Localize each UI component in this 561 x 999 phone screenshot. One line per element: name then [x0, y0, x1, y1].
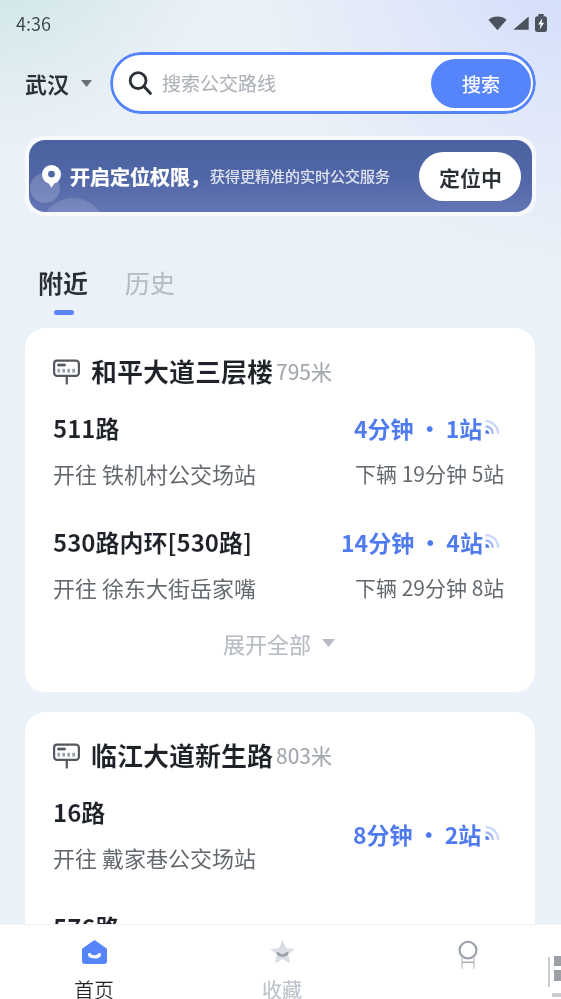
button[interactable]: 511路 — [53, 410, 505, 489]
staticText: 首页 — [74, 975, 114, 999]
staticText: 附近 — [38, 264, 89, 300]
staticText: 历史 — [125, 264, 176, 300]
staticText: 开往 徐东大街岳家嘴 — [53, 571, 256, 603]
staticText: 搜索 — [462, 70, 501, 98]
staticText: 14分钟 · 4站 — [341, 525, 483, 558]
staticText: 定位中 — [439, 162, 502, 192]
button[interactable]: 530路内环[530路] — [53, 524, 505, 603]
staticText: 下辆 19分钟 5站 — [355, 458, 505, 488]
staticText: 和平大道三层楼 — [91, 352, 274, 390]
staticText: 下辆 29分钟 8站 — [355, 572, 505, 602]
staticText: 开启定位权限， — [70, 162, 210, 191]
button[interactable]: 开启定位权限， — [29, 140, 532, 212]
staticText: 795米 — [276, 356, 332, 386]
staticText: 4分钟 · 1站 — [354, 411, 483, 444]
staticText: 8分钟 · 2站 — [353, 817, 482, 850]
staticText: 576路 — [53, 909, 120, 944]
staticText: 收藏 — [262, 975, 302, 999]
staticText: 武汉 — [25, 67, 70, 99]
staticText: 搜索公交路线 — [162, 69, 277, 97]
button[interactable]: 首页 — [0, 924, 188, 999]
button[interactable]: 收藏 — [188, 924, 376, 999]
button[interactable]: 武汉 — [19, 61, 98, 105]
staticText: 获得更精准的实时公交服务 — [210, 165, 391, 187]
button[interactable]: 搜索 — [431, 59, 531, 108]
button[interactable]: 历史 — [125, 264, 176, 300]
staticText: 16路 — [53, 794, 106, 829]
staticText: 530路内环[530路] — [53, 524, 253, 559]
button[interactable]: 附近 — [38, 264, 89, 315]
staticText: 开往 戴家巷公交场站 — [53, 841, 256, 873]
staticText: 开往 铁机村公交场站 — [53, 457, 256, 489]
staticText: 临江大道新生路 — [91, 736, 274, 774]
button[interactable]: 16路 — [53, 794, 505, 873]
button[interactable]: 展开全部 — [53, 627, 505, 659]
button[interactable]: 搜索公交路线 — [110, 52, 536, 114]
staticText: 511路 — [53, 410, 120, 445]
staticText: 803米 — [276, 740, 332, 770]
button[interactable]: 我的 — [376, 924, 561, 999]
staticText: 4:36 — [16, 10, 51, 36]
staticText: 展开全部 — [223, 627, 312, 659]
button[interactable]: 定位中 — [419, 152, 521, 201]
